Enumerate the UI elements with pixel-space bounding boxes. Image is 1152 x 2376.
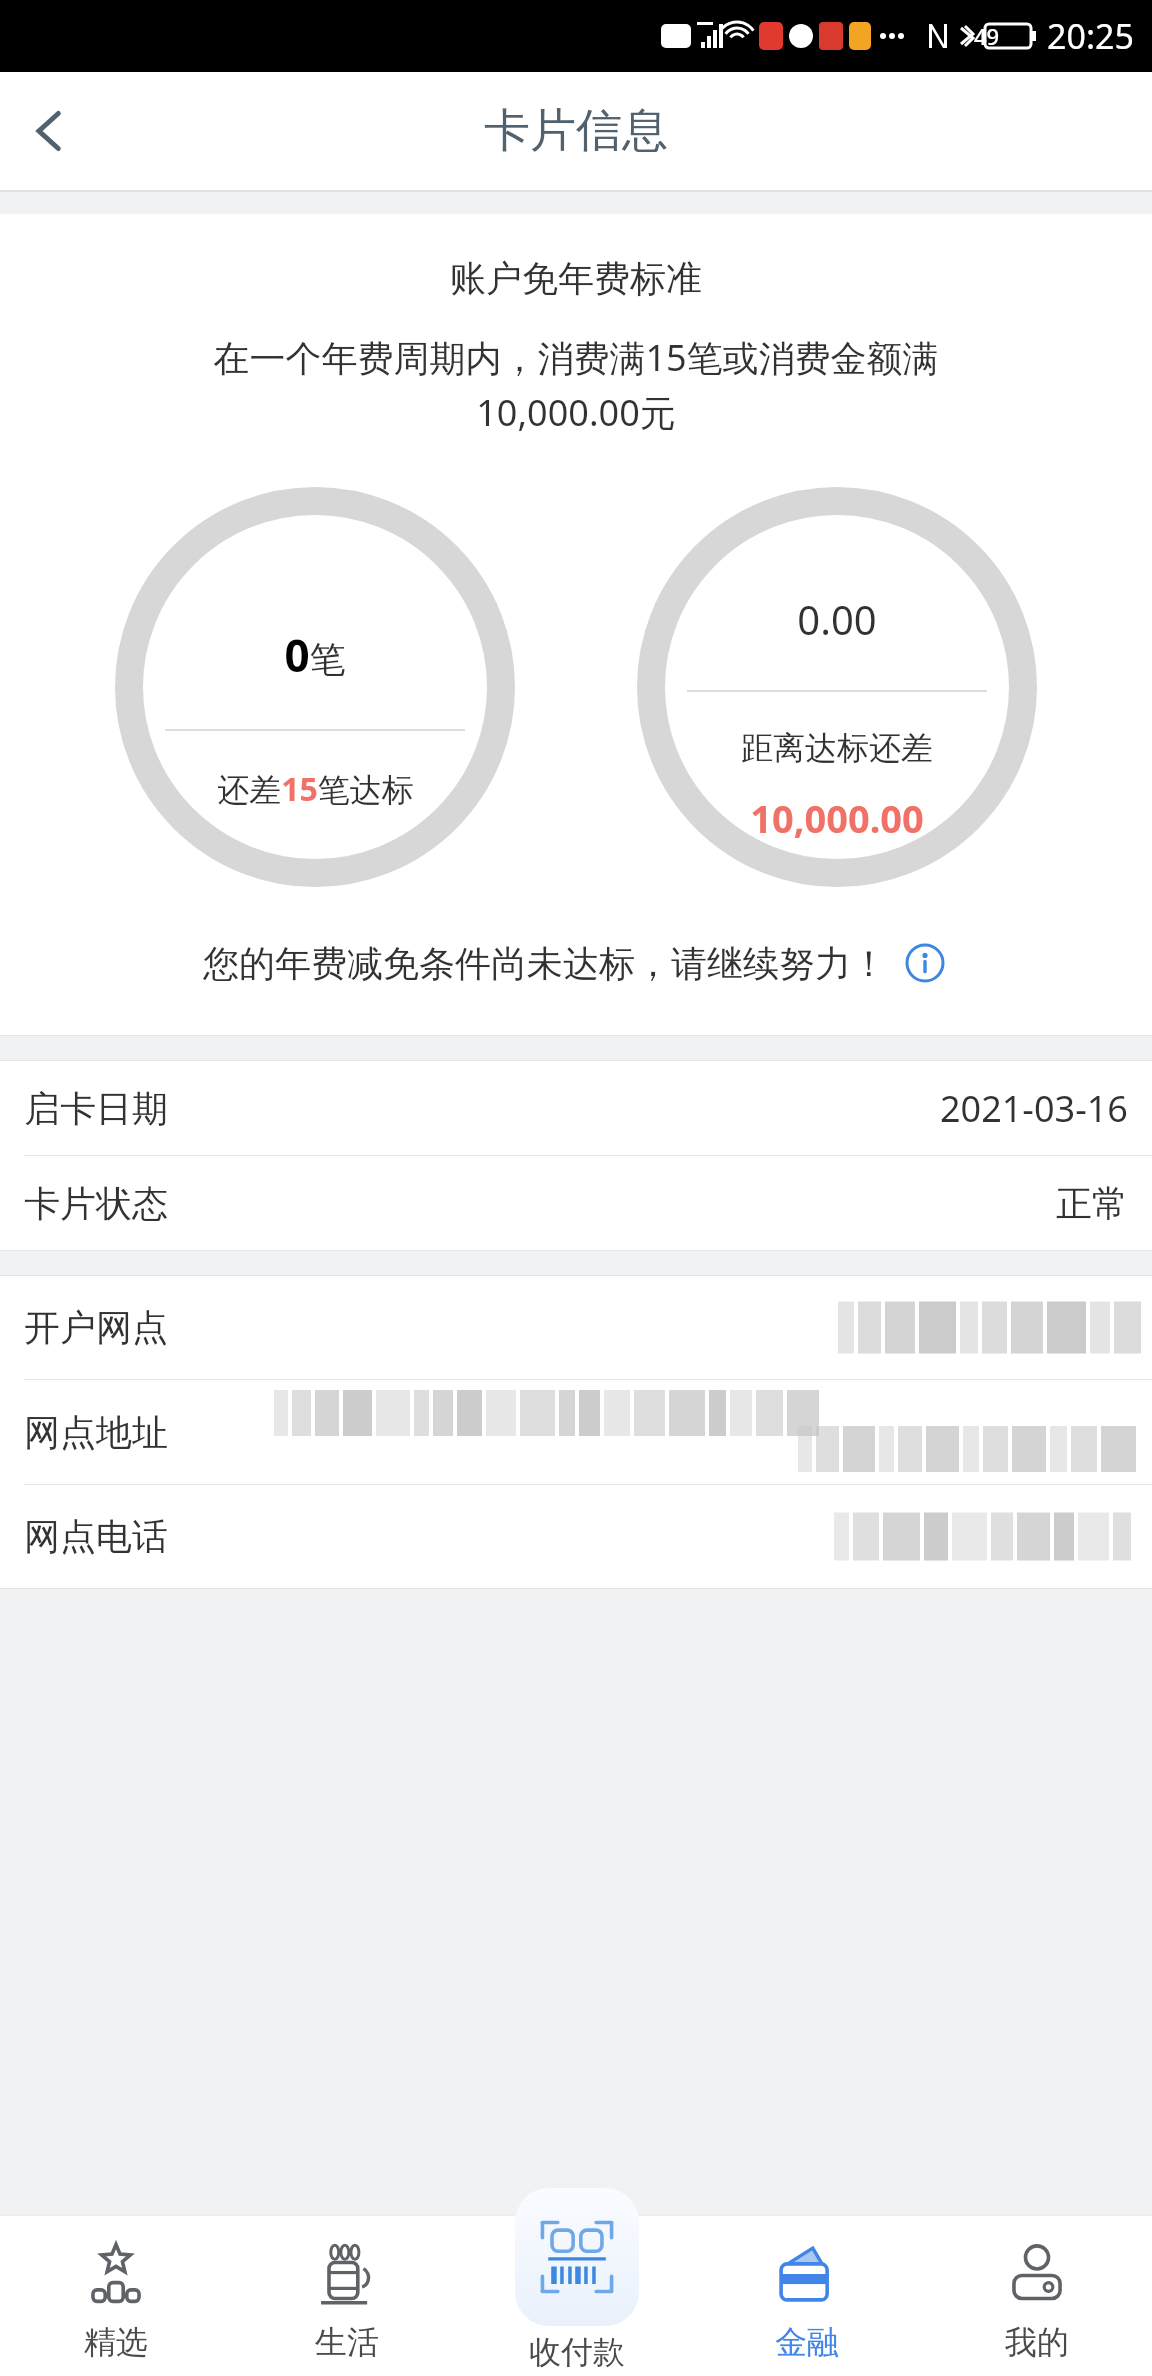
staticText: 网点地址 — [24, 1410, 168, 1455]
staticText: 生活 — [315, 2322, 379, 2362]
staticText: 20:25 — [1047, 13, 1134, 59]
button[interactable]: 金融 — [692, 2180, 922, 2376]
staticText: 在一个年费周期内，消费满15笔或消费金额满 10,000.00元 — [70, 333, 1082, 437]
button[interactable]: 网点地址 — [0, 1380, 1152, 1484]
button[interactable]: 卡片状态 — [0, 1156, 1152, 1250]
staticText: 还差15笔达标 — [217, 767, 414, 811]
staticText: 网点电话 — [24, 1514, 168, 1559]
staticText: 卡片状态 — [24, 1181, 168, 1226]
button[interactable]: 收付款 — [462, 2180, 692, 2376]
button[interactable]: 开户网点 — [0, 1276, 1152, 1379]
staticText: 收付款 — [529, 2332, 625, 2372]
staticText: 精选 — [84, 2322, 148, 2362]
button[interactable]: 网点电话 — [0, 1485, 1152, 1588]
staticText: 49 — [974, 21, 1000, 51]
staticText: 开户网点 — [24, 1305, 168, 1350]
button[interactable]: 精选 — [0, 2180, 231, 2376]
staticText: 距离达标还差 — [741, 728, 933, 768]
staticText: 正常 — [1056, 1181, 1128, 1226]
staticText: 0.00 — [797, 592, 877, 646]
button[interactable]: Info — [901, 939, 949, 987]
staticText: 账户免年费标准 — [450, 256, 702, 301]
button[interactable]: 启卡日期 — [0, 1061, 1152, 1155]
staticText: 我的 — [1005, 2322, 1069, 2362]
staticText: 0笔 — [284, 625, 346, 685]
staticText: 2021-03-16 — [940, 1084, 1128, 1133]
staticText: 启卡日期 — [24, 1086, 168, 1131]
staticText: 金融 — [775, 2322, 839, 2362]
staticText: 您的年费减免条件尚未达标，请继续努力！ — [203, 941, 887, 986]
button[interactable]: 我的 — [922, 2180, 1152, 2376]
staticText: 10,000.00 — [750, 792, 924, 844]
button[interactable]: 生活 — [231, 2180, 462, 2376]
staticText: 卡片信息 — [484, 102, 668, 160]
button[interactable]: Back — [8, 89, 92, 173]
